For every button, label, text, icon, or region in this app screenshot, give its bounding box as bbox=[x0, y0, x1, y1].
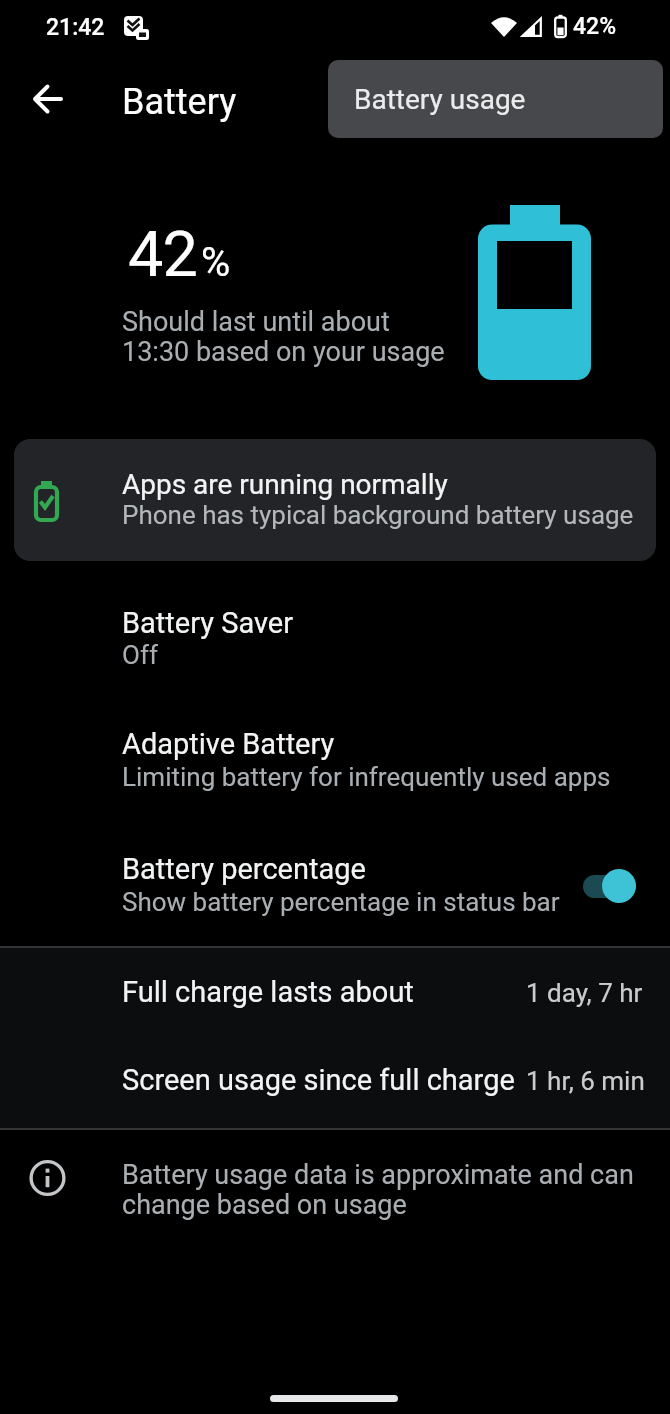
staticText: Should last until about 13:30 based on y… bbox=[122, 306, 445, 367]
staticText: 42 bbox=[128, 218, 197, 292]
staticText: Show battery percentage in status bar bbox=[122, 887, 560, 917]
button[interactable]: Battery usage bbox=[328, 60, 663, 138]
staticText: 42% bbox=[573, 13, 617, 40]
staticText: Battery percentage bbox=[122, 852, 366, 886]
staticText: Apps are running normally bbox=[122, 468, 448, 501]
staticText: Battery Saver bbox=[122, 606, 294, 640]
staticText: Full charge lasts about bbox=[122, 975, 414, 1009]
staticText: Battery usage bbox=[354, 83, 526, 116]
staticText: Phone has typical background battery usa… bbox=[122, 500, 634, 530]
staticText: Battery usage data is approximate and ca… bbox=[122, 1159, 634, 1220]
button[interactable] bbox=[24, 75, 72, 123]
staticText: Battery bbox=[122, 81, 237, 123]
staticText: Limiting battery for infrequently used a… bbox=[122, 762, 611, 792]
button[interactable]: Apps are running normally bbox=[14, 439, 656, 561]
button[interactable]: Battery Saver bbox=[0, 588, 670, 698]
button[interactable]: Full charge lasts about bbox=[0, 950, 670, 1037]
staticText: Off bbox=[122, 640, 158, 670]
button[interactable]: Adaptive Battery bbox=[0, 709, 670, 819]
staticText: 21:42 bbox=[46, 14, 105, 41]
staticText: % bbox=[201, 239, 231, 286]
button[interactable]: Screen usage since full charge bbox=[0, 1037, 670, 1125]
staticText: 1 day, 7 hr bbox=[526, 978, 643, 1008]
staticText: Adaptive Battery bbox=[122, 727, 335, 761]
staticText: Screen usage since full charge bbox=[122, 1063, 515, 1097]
staticText: 1 hr, 6 min bbox=[526, 1066, 645, 1096]
button[interactable]: Battery percentage bbox=[0, 834, 670, 944]
